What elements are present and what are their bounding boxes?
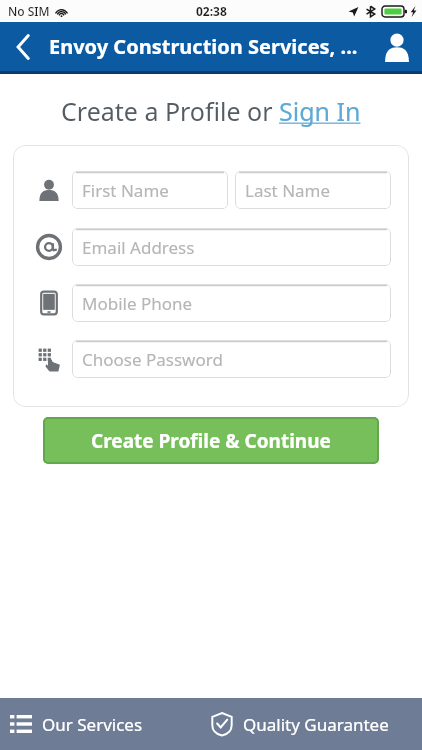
staticText: No SIM [8,3,50,19]
staticText: Envoy Construction Services, ... [49,33,358,60]
staticText: Mobile Phone [82,292,193,315]
button[interactable]: Email Address [72,228,391,266]
button[interactable]: Our Services [0,698,211,750]
button[interactable]: Last Name [235,171,391,209]
staticText: First Name [82,179,169,202]
staticText: Email Address [82,236,195,259]
staticText: Create a Profile or Sign In [61,94,361,128]
staticText: Create Profile & Continue [91,428,331,454]
staticText: Quality Guarantee [243,713,389,736]
button[interactable]: Create Profile & Continue [43,417,379,464]
button[interactable]: Quality Guarantee [211,698,422,750]
staticText: Our Services [42,713,143,736]
button[interactable]: Back [0,22,46,71]
staticText: Last Name [245,179,331,202]
staticText: 02:38 [196,3,227,19]
button[interactable]: First Name [72,171,228,209]
button[interactable]: Choose Password [72,340,391,378]
staticText: Choose Password [82,348,223,371]
button[interactable]: Mobile Phone [72,284,391,322]
button[interactable]: Account [372,22,422,71]
